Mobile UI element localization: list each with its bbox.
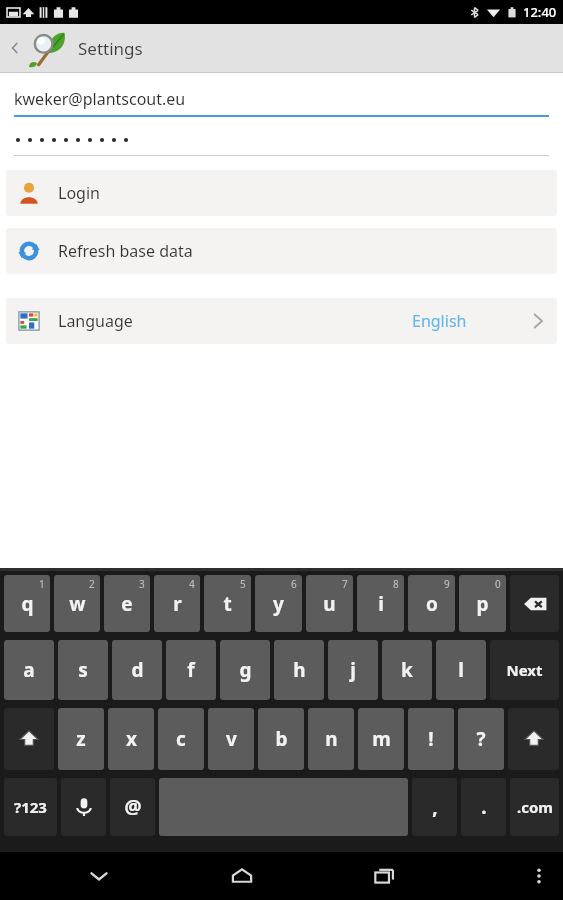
button[interactable]: j xyxy=(328,640,378,700)
staticText: a xyxy=(23,657,35,683)
button[interactable]: z xyxy=(58,708,104,770)
staticText: 4 xyxy=(189,577,195,591)
button[interactable]: . xyxy=(461,778,506,836)
staticText: 1 xyxy=(39,577,45,591)
staticText: 12:40 xyxy=(523,3,557,21)
staticText: 8 xyxy=(393,577,399,591)
staticText: h xyxy=(293,657,306,683)
staticText: j xyxy=(350,657,356,683)
staticText: z xyxy=(76,726,86,752)
button[interactable]: p xyxy=(459,575,506,632)
staticText: x xyxy=(126,726,137,752)
staticText: 7 xyxy=(342,577,348,591)
button[interactable]: More options xyxy=(521,858,557,894)
button[interactable]: Recent apps xyxy=(363,854,407,898)
button[interactable]: k xyxy=(382,640,432,700)
button[interactable]: b xyxy=(258,708,304,770)
button[interactable]: Shift xyxy=(508,708,559,770)
staticText: u xyxy=(323,591,336,617)
staticText: ! xyxy=(428,726,434,752)
button[interactable]: l xyxy=(436,640,486,700)
button[interactable]: ?123 xyxy=(4,778,57,836)
button[interactable]: m xyxy=(358,708,404,770)
staticText: 0 xyxy=(495,577,501,591)
button[interactable]: w xyxy=(54,575,100,632)
staticText: y xyxy=(273,591,284,617)
button[interactable]: Next xyxy=(490,640,559,700)
staticText: f xyxy=(187,657,195,683)
staticText: English xyxy=(412,310,467,332)
staticText: e xyxy=(121,591,133,617)
staticText: c xyxy=(176,726,186,752)
staticText: kweker@plantscout.eu xyxy=(14,88,186,110)
staticText: w xyxy=(69,591,86,617)
button[interactable]: g xyxy=(220,640,270,700)
button[interactable]: Refresh base data xyxy=(6,228,557,274)
staticText: i xyxy=(378,591,384,617)
staticText: @ xyxy=(124,794,142,820)
button[interactable]: i xyxy=(357,575,404,632)
staticText: d xyxy=(131,657,144,683)
button[interactable]: .com xyxy=(510,778,559,836)
button[interactable]: x xyxy=(108,708,154,770)
staticText: 6 xyxy=(291,577,297,591)
staticText: b xyxy=(275,726,288,752)
staticText: g xyxy=(239,657,252,683)
button[interactable] xyxy=(14,125,549,156)
staticText: 2 xyxy=(89,577,95,591)
button[interactable]: q xyxy=(4,575,50,632)
staticText: . xyxy=(481,794,487,820)
button[interactable]: ! xyxy=(408,708,454,770)
staticText: ?123 xyxy=(14,797,47,817)
staticText: m xyxy=(372,726,391,752)
staticText: s xyxy=(78,657,88,683)
button[interactable]: f xyxy=(166,640,216,700)
staticText: , xyxy=(432,794,438,820)
button[interactable]: Home xyxy=(220,854,264,898)
button[interactable]: Shift xyxy=(4,708,54,770)
button[interactable]: s xyxy=(58,640,108,700)
button[interactable]: Language xyxy=(6,298,557,344)
staticText: Language xyxy=(58,310,133,332)
button[interactable]: e xyxy=(104,575,150,632)
button[interactable]: y xyxy=(255,575,302,632)
staticText: Settings xyxy=(78,37,143,60)
staticText: t xyxy=(223,591,232,617)
button[interactable]: v xyxy=(208,708,254,770)
button[interactable]: n xyxy=(308,708,354,770)
button[interactable]: Delete xyxy=(510,575,559,632)
button[interactable]: , xyxy=(412,778,457,836)
staticText: o xyxy=(426,591,438,617)
staticText: .com xyxy=(517,797,553,817)
staticText: r xyxy=(173,591,182,617)
button[interactable]: t xyxy=(204,575,251,632)
staticText: Login xyxy=(58,182,100,204)
staticText: q xyxy=(21,591,34,617)
staticText: 9 xyxy=(444,577,450,591)
button[interactable]: h xyxy=(274,640,324,700)
staticText: l xyxy=(458,657,464,683)
button[interactable]: u xyxy=(306,575,353,632)
staticText: Next xyxy=(506,660,543,680)
button[interactable]: ? xyxy=(458,708,504,770)
button[interactable]: c xyxy=(158,708,204,770)
staticText: p xyxy=(476,591,489,617)
staticText: k xyxy=(401,657,413,683)
staticText: n xyxy=(325,726,338,752)
staticText: 3 xyxy=(139,577,145,591)
button[interactable]: Voice input xyxy=(61,778,106,836)
button[interactable]: @ xyxy=(110,778,155,836)
button[interactable]: Login xyxy=(6,170,557,216)
staticText: ? xyxy=(476,726,486,752)
staticText: v xyxy=(226,726,237,752)
button[interactable]: o xyxy=(408,575,455,632)
staticText: 5 xyxy=(240,577,246,591)
button[interactable]: d xyxy=(112,640,162,700)
staticText: Refresh base data xyxy=(58,240,193,262)
button[interactable]: a xyxy=(4,640,54,700)
button[interactable]: Back xyxy=(4,37,26,59)
button[interactable]: kweker@plantscout.eu xyxy=(14,83,549,117)
button[interactable]: r xyxy=(154,575,200,632)
button[interactable]: Hide keyboard xyxy=(77,854,121,898)
